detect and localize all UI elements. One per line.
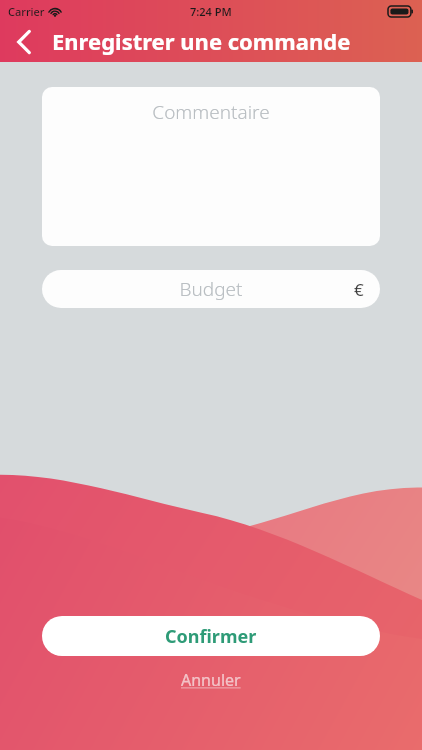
staticText: Budget bbox=[179, 276, 243, 302]
staticText: Commentaire bbox=[152, 99, 270, 125]
staticText: 7:24 PM bbox=[190, 4, 232, 19]
staticText: € bbox=[354, 278, 364, 301]
staticText: Confirmer bbox=[165, 624, 257, 649]
staticText: Annuler bbox=[181, 669, 241, 691]
button[interactable]: Confirmer bbox=[42, 616, 380, 656]
button[interactable]: Annuler bbox=[169, 666, 253, 694]
staticText: Carrier bbox=[8, 4, 45, 19]
button[interactable]: Budget bbox=[42, 270, 380, 308]
staticText: Enregistrer une commande bbox=[52, 26, 351, 56]
button[interactable]: Commentaire bbox=[42, 87, 380, 246]
button[interactable]: Back bbox=[0, 22, 48, 62]
